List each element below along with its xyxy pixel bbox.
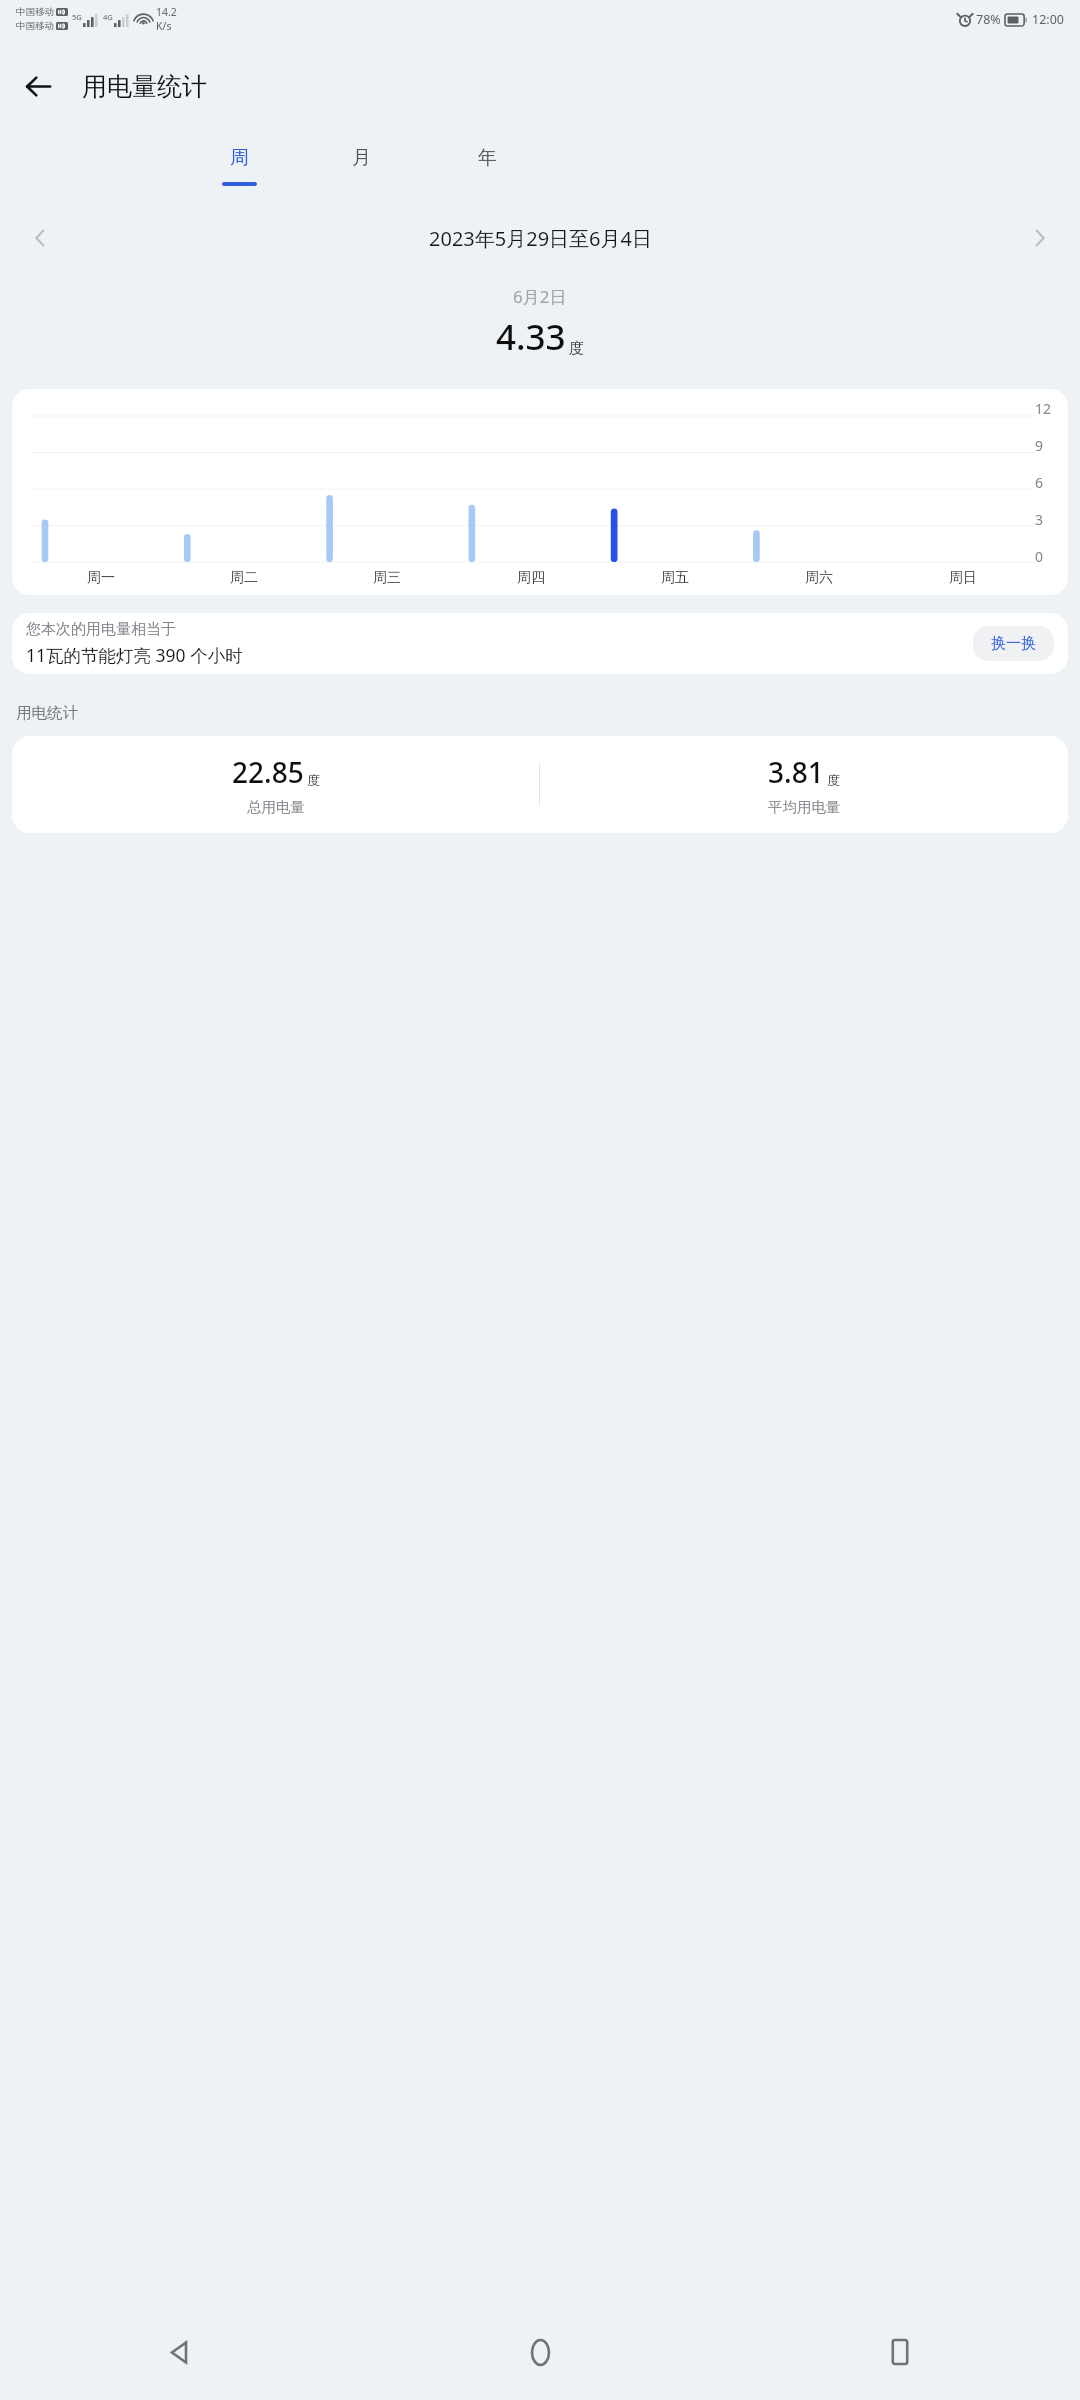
staticText: 周三 [373,569,401,587]
staticText: 度 [569,339,584,358]
button[interactable]: 换一换 [973,626,1054,661]
staticText: 4G [103,12,113,22]
staticText: 月 [352,146,371,170]
staticText: 6 [1035,473,1044,492]
button[interactable]: 周 [206,134,272,207]
button[interactable]: Back [10,58,66,114]
staticText: 用电量统计 [82,71,207,102]
button[interactable]: 22.85 [12,736,539,833]
staticText: 11瓦的节能灯亮 390 个小时 [26,643,243,667]
staticText: 3 [1035,510,1044,529]
staticText: 2023年5月29日至6月4日 [429,225,652,252]
staticText: 您本次的用电量相当于 [26,620,176,639]
staticText: 换一换 [991,634,1036,653]
button[interactable]: 3.81 [540,736,1068,833]
button[interactable]: 月 [328,134,394,207]
staticText: 周二 [230,569,258,587]
staticText: 5G [72,12,82,22]
staticText: 年 [478,146,497,170]
button[interactable]: Recents [720,2304,1080,2400]
staticText: 6月2日 [513,285,567,308]
button[interactable]: Next [1014,212,1066,264]
staticText: 3.81 [768,753,824,791]
button[interactable]: Previous [14,212,66,264]
staticText: 中国移动 [16,20,54,32]
staticText: K/s [156,19,172,33]
button[interactable]: 年 [454,134,520,207]
staticText: 度 [307,772,320,788]
staticText: 周日 [949,569,977,587]
staticText: 周一 [87,569,115,587]
staticText: 周 [230,146,249,170]
staticText: 14.2 [156,5,177,19]
staticText: 周六 [805,569,833,587]
staticText: 78% [976,11,1001,28]
staticText: 22.85 [232,753,304,791]
staticText: 0 [1035,547,1044,566]
staticText: 12:00 [1032,11,1064,28]
staticText: 9 [1035,436,1044,455]
staticText: 周五 [661,569,689,587]
staticText: 中国移动 [16,6,54,18]
staticText: 4.33 [496,313,566,361]
button[interactable]: Back [0,2304,360,2400]
button[interactable]: Home [360,2304,720,2400]
staticText: 平均用电量 [768,798,841,816]
staticText: 周四 [517,569,545,587]
staticText: 用电统计 [16,703,78,723]
staticText: 总用电量 [247,798,305,816]
staticText: 度 [827,772,840,788]
staticText: 12 [1035,399,1052,418]
